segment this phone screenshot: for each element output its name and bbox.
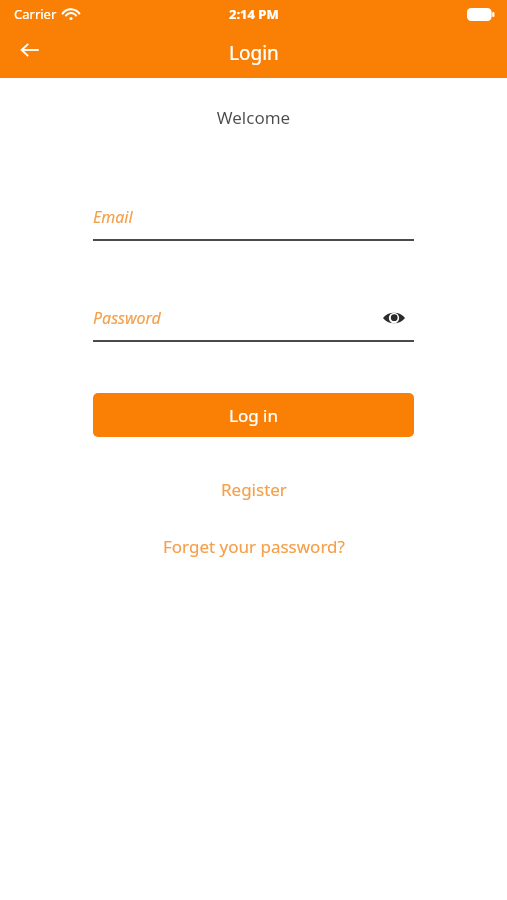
button[interactable]: Forget your password? <box>0 530 507 562</box>
button[interactable]: Back <box>6 26 54 74</box>
button[interactable]: Register <box>0 473 507 505</box>
staticText: Email <box>93 206 133 228</box>
staticText: Login <box>229 40 279 66</box>
staticText: Welcome <box>0 106 507 129</box>
staticText: 2:14 PM <box>229 5 279 23</box>
button[interactable]: Show password <box>374 298 414 338</box>
staticText: Log in <box>229 404 278 427</box>
staticText: Forget your password? <box>163 535 345 558</box>
button[interactable]: Log in <box>93 393 414 437</box>
staticText: Password <box>93 307 161 329</box>
staticText: Register <box>221 478 287 501</box>
button[interactable] <box>93 296 414 340</box>
button[interactable]: Email <box>93 195 414 239</box>
staticText: Carrier <box>14 5 57 23</box>
